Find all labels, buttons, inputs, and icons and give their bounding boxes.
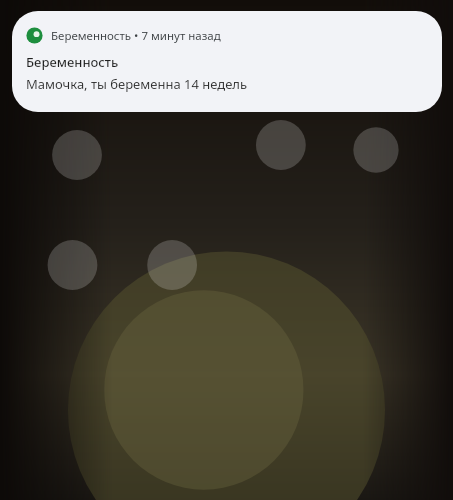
staticText: Мамочка, ты беременна 14 недель [26, 75, 248, 93]
staticText: Беременность • 7 минут назад [51, 28, 221, 44]
button[interactable]: Беременность • 7 минут назад [12, 11, 442, 112]
staticText: Беременность [26, 53, 119, 71]
